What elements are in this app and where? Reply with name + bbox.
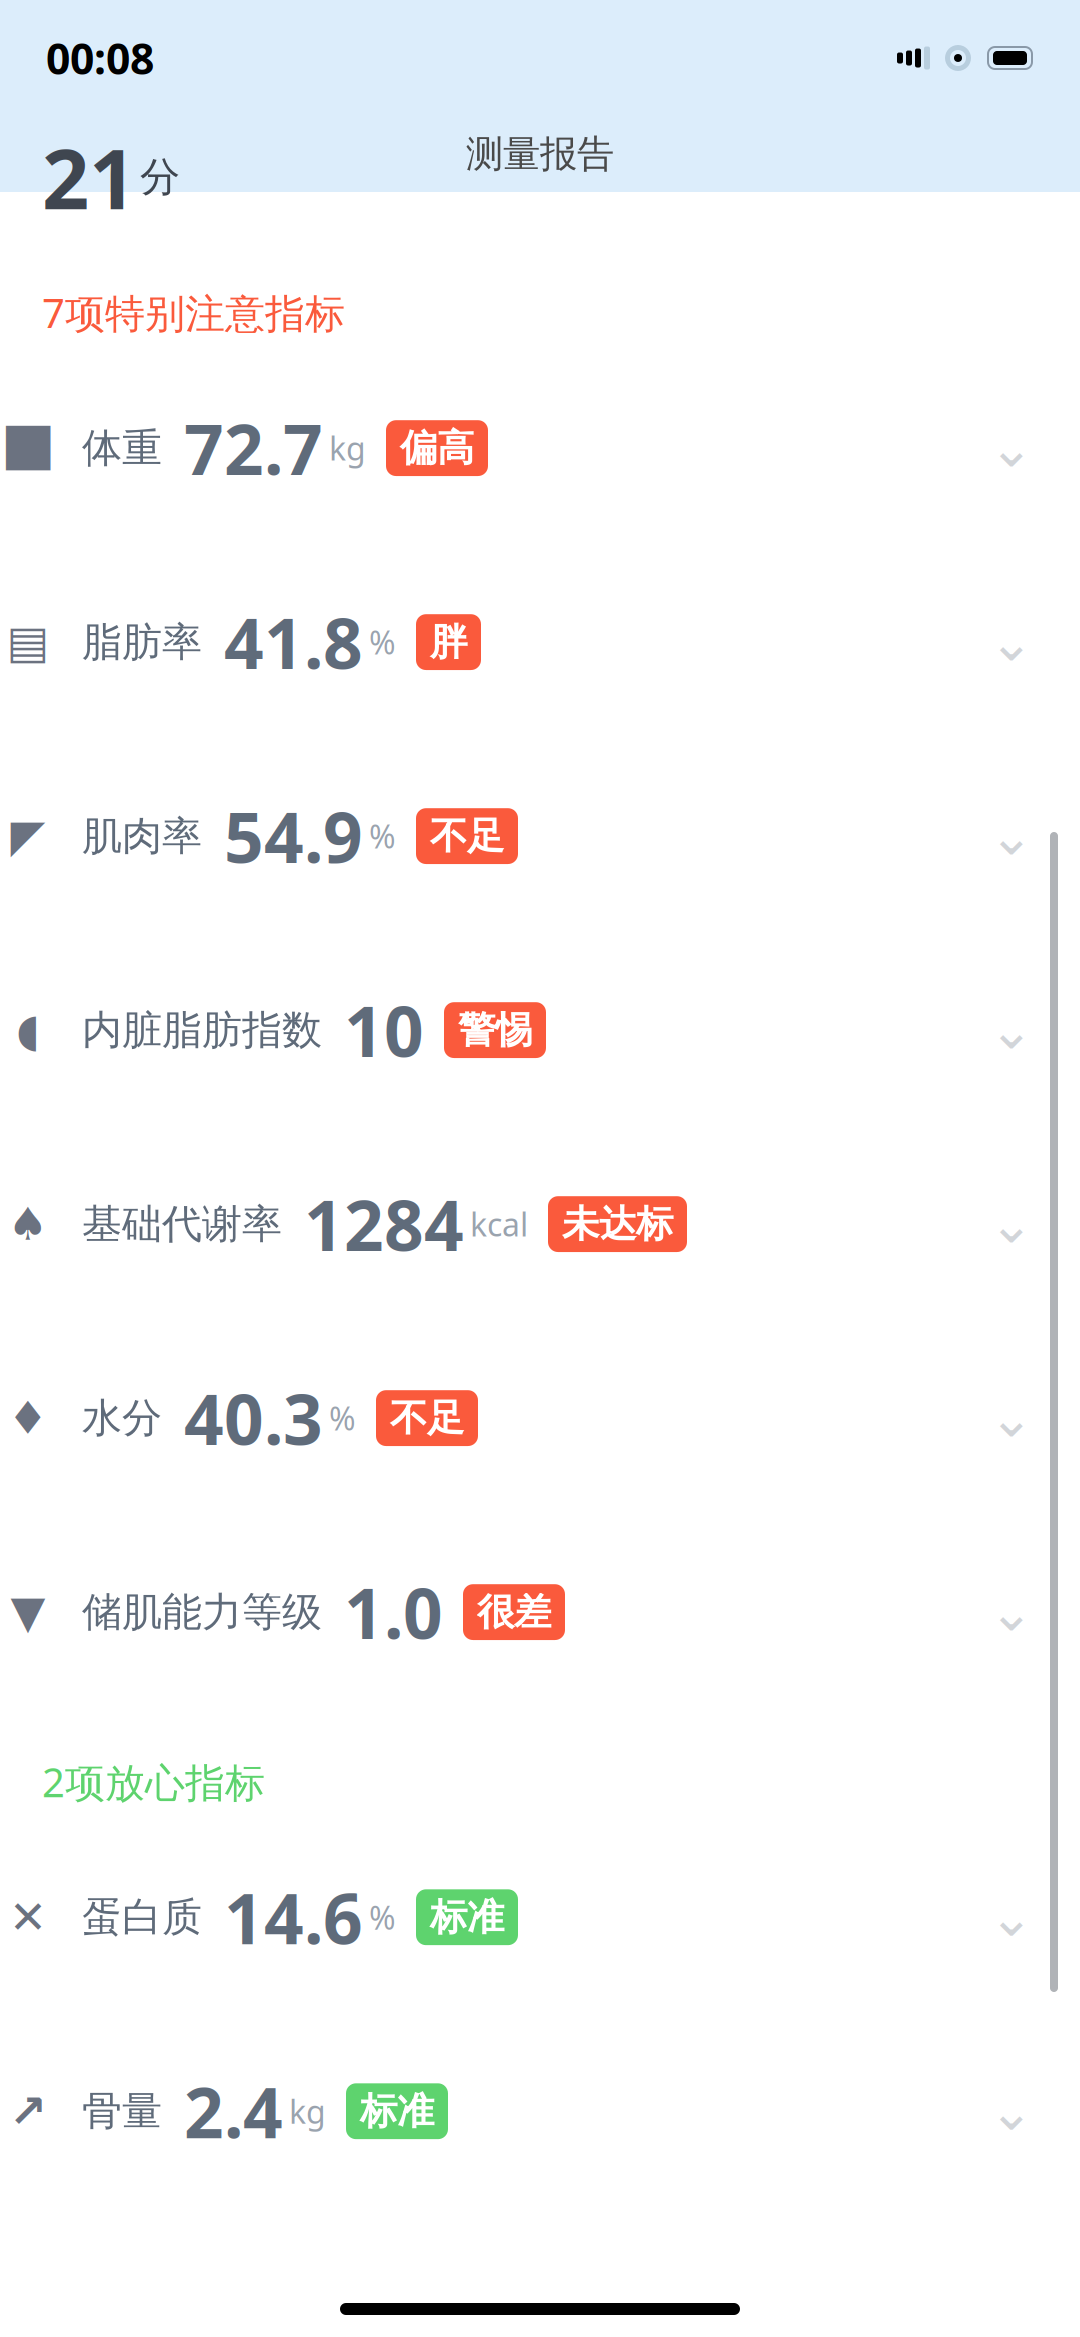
button[interactable]: ▤: [0, 545, 1080, 739]
button[interactable]: ◖: [0, 933, 1080, 1127]
staticText: 储肌能力等级: [82, 1588, 322, 1637]
button[interactable]: ◤: [0, 739, 1080, 933]
staticText: ▤: [6, 616, 49, 668]
staticText: 2.4: [184, 2065, 283, 2157]
staticText: %: [369, 621, 396, 663]
staticText: 蛋白质: [82, 1893, 202, 1942]
staticText: ⌄: [989, 806, 1034, 866]
staticText: 不足: [430, 813, 504, 859]
staticText: 72.7: [184, 402, 323, 494]
staticText: 骨量: [82, 2087, 162, 2136]
staticText: 体重: [82, 424, 162, 473]
staticText: kg: [329, 427, 366, 469]
staticText: 1284: [304, 1178, 464, 1270]
staticText: ▼: [10, 1586, 45, 1638]
staticText: 肌肉率: [82, 812, 202, 861]
staticText: ♠: [7, 1198, 48, 1250]
staticText: 未达标: [562, 1201, 673, 1247]
staticText: kg: [289, 2090, 326, 2132]
staticText: 标准: [360, 2088, 434, 2134]
staticText: 基础代谢率: [82, 1200, 282, 1249]
staticText: 2项放心指标: [42, 1755, 265, 1808]
staticText: ↗: [9, 2085, 47, 2137]
staticText: ⌄: [989, 1000, 1034, 1060]
staticText: 不足: [390, 1395, 464, 1441]
staticText: ◖: [16, 1004, 40, 1056]
staticText: kcal: [470, 1203, 528, 1245]
staticText: ⌄: [989, 1194, 1034, 1254]
staticText: %: [329, 1397, 356, 1439]
button[interactable]: ↗: [0, 2014, 1080, 2208]
staticText: 7项特别注意指标: [42, 286, 345, 339]
staticText: 胖: [430, 619, 467, 665]
staticText: ✕: [9, 1891, 47, 1943]
staticText: 分: [140, 152, 180, 202]
staticText: 41.8: [224, 596, 363, 688]
staticText: %: [369, 1896, 396, 1938]
staticText: 14.6: [224, 1871, 363, 1963]
staticText: 标准: [430, 1894, 504, 1940]
staticText: 54.9: [224, 790, 363, 882]
staticText: 警惕: [458, 1007, 532, 1053]
staticText: 21: [42, 122, 136, 232]
button[interactable]: ✕: [0, 1820, 1080, 2014]
button[interactable]: ▼: [0, 1515, 1080, 1709]
staticText: 10: [344, 984, 424, 1076]
staticText: 水分: [82, 1394, 162, 1443]
staticText: 40.3: [184, 1372, 323, 1464]
staticText: 脂肪率: [82, 618, 202, 667]
button[interactable]: ♠: [0, 1127, 1080, 1321]
staticText: ⌄: [989, 1887, 1034, 1947]
staticText: 测量报告: [466, 131, 614, 177]
staticText: 00:08: [46, 30, 154, 86]
staticText: ⬛︎: [5, 426, 50, 470]
staticText: ♦: [7, 1392, 48, 1444]
staticText: ⌄: [989, 612, 1034, 672]
staticText: ◤: [10, 810, 45, 862]
staticText: ⌄: [989, 418, 1034, 478]
button[interactable]: ♦: [0, 1321, 1080, 1515]
staticText: 1.0: [344, 1566, 443, 1658]
staticText: ⌄: [989, 1582, 1034, 1642]
staticText: ⌄: [989, 2081, 1034, 2141]
button[interactable]: ⬛︎: [0, 351, 1080, 545]
staticText: %: [369, 815, 396, 857]
staticText: 内脏脂肪指数: [82, 1006, 322, 1055]
staticText: ⌄: [989, 1388, 1034, 1448]
staticText: 偏高: [400, 425, 474, 471]
staticText: 很差: [477, 1589, 551, 1635]
